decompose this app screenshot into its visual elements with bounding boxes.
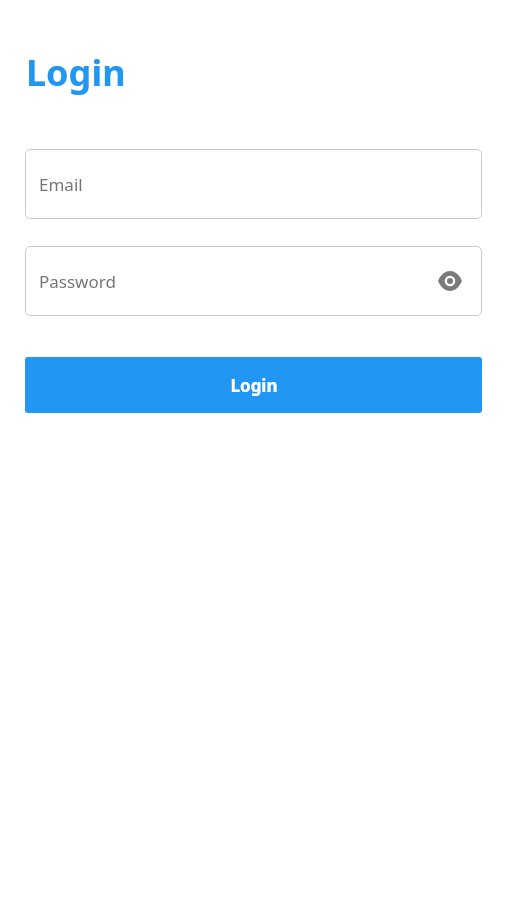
button[interactable]: Login bbox=[25, 357, 482, 413]
staticText: Password bbox=[39, 270, 116, 293]
staticText: Login bbox=[26, 48, 126, 97]
staticText: Email bbox=[39, 173, 83, 196]
staticText: Login bbox=[230, 374, 278, 397]
button[interactable]: Password bbox=[25, 246, 482, 316]
button[interactable]: Show password bbox=[434, 265, 466, 297]
button[interactable]: Email bbox=[25, 149, 482, 219]
